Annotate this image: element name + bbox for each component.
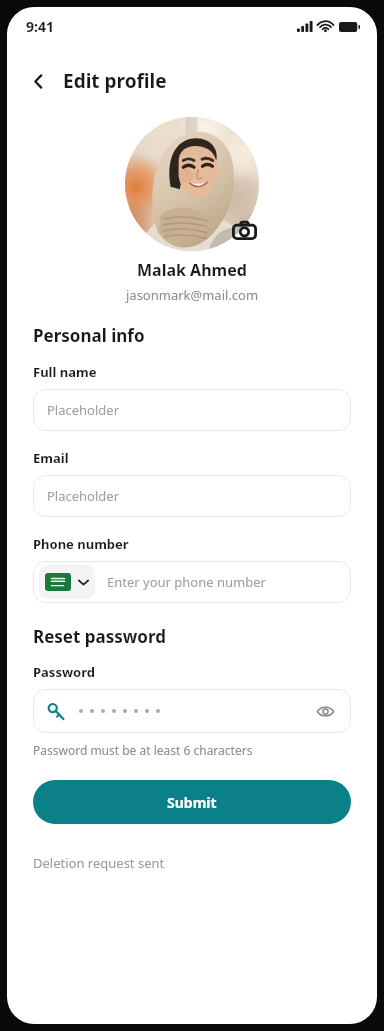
button[interactable]: Submit	[33, 780, 351, 824]
staticText: Reset password	[33, 625, 166, 648]
button[interactable]: Back	[21, 64, 55, 98]
staticText: Placeholder	[47, 487, 120, 505]
staticText: Phone number	[33, 535, 129, 553]
staticText: 9:41	[26, 17, 54, 36]
staticText: Placeholder	[47, 401, 120, 419]
staticText: Password	[33, 663, 95, 681]
button[interactable]: Deletion request sent	[33, 854, 351, 872]
staticText: Malak Ahmed	[137, 259, 247, 281]
staticText: Personal info	[33, 324, 145, 347]
button[interactable]: Select country code	[39, 565, 95, 599]
staticText: Deletion request sent	[33, 854, 165, 872]
button[interactable]: Show password	[313, 699, 337, 723]
button[interactable]: Select country code	[33, 561, 351, 603]
button[interactable]: Placeholder	[33, 475, 351, 517]
button[interactable]: Change profile photo	[125, 117, 259, 251]
staticText: Enter your phone number	[107, 573, 266, 591]
staticText: jasonmark@mail.com	[126, 286, 259, 304]
button[interactable]: Show password	[33, 689, 351, 733]
staticText: Full name	[33, 363, 97, 381]
staticText: Edit profile	[63, 68, 167, 94]
staticText: Email	[33, 449, 69, 467]
button[interactable]: Placeholder	[33, 389, 351, 431]
staticText: Submit	[167, 793, 217, 812]
staticText: Password must be at least 6 characters	[33, 742, 253, 758]
